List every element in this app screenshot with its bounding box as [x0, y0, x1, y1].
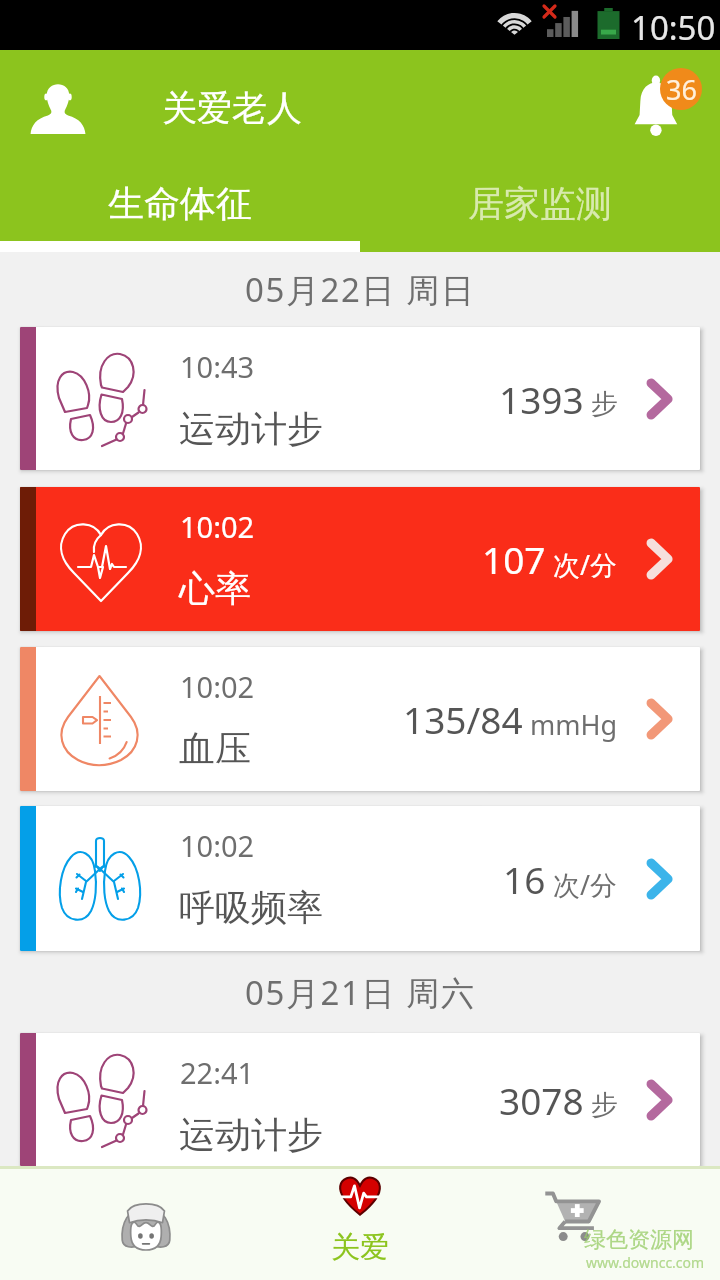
staticText: 步 [591, 387, 618, 421]
staticText: 10:02 [180, 826, 255, 865]
staticText: 关爱老人 [162, 86, 302, 130]
staticText: 05月21日 周六 [245, 970, 476, 1015]
staticText: 10:43 [180, 347, 255, 386]
button[interactable]: 居家监测 [360, 160, 720, 246]
staticText: 居家监测 [468, 181, 612, 226]
staticText: 心率 [179, 566, 251, 611]
staticText: 107 [482, 534, 546, 584]
button[interactable]: 10:02 [20, 647, 700, 791]
button[interactable]: 关爱 [300, 1172, 420, 1280]
staticText: mmHg [530, 706, 618, 743]
staticText: www.downcc.com [586, 1253, 705, 1272]
staticText: 10:02 [180, 507, 255, 546]
staticText: 05月22日 周日 [245, 267, 476, 312]
button[interactable]: 10:02 [20, 487, 700, 631]
button[interactable]: Notifications [624, 68, 700, 144]
staticText: 22:41 [180, 1053, 255, 1092]
button[interactable]: 10:43 [20, 327, 700, 470]
staticText: 步 [591, 1088, 618, 1122]
staticText: 生命体征 [108, 181, 252, 226]
staticText: 运动计步 [179, 1112, 323, 1157]
staticText: 次/分 [553, 546, 618, 583]
staticText: 10:02 [180, 667, 255, 706]
staticText: 36 [666, 71, 697, 108]
staticText: 血压 [179, 726, 251, 771]
button[interactable]: Profile [30, 76, 86, 134]
button[interactable]: Shop [528, 1177, 624, 1257]
button[interactable]: 10:02 [20, 806, 700, 951]
staticText: 1393 [499, 374, 584, 424]
staticText: 135/84 [403, 694, 523, 744]
staticText: 呼吸频率 [179, 885, 323, 930]
button[interactable]: Nurse [98, 1181, 194, 1257]
staticText: 3078 [499, 1075, 584, 1125]
button[interactable]: 生命体征 [0, 160, 360, 246]
staticText: 次/分 [553, 866, 618, 903]
staticText: 16 [503, 854, 546, 904]
button[interactable]: 22:41 [20, 1033, 700, 1166]
staticText: 运动计步 [179, 406, 323, 451]
staticText: 关爱 [331, 1229, 389, 1266]
staticText: 10:50 [631, 5, 716, 50]
staticText: 绿色资源网 [584, 1226, 694, 1254]
